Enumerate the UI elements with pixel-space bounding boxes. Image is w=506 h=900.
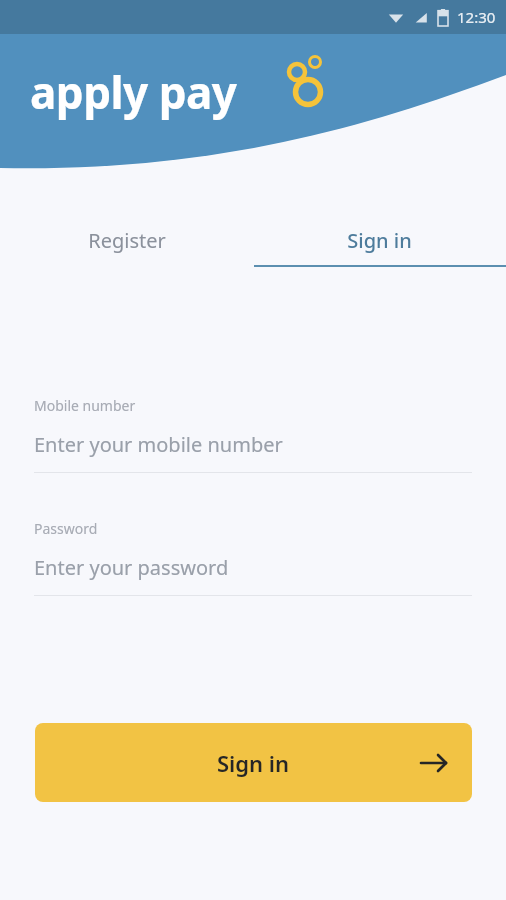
staticText: Enter your password: [34, 554, 229, 581]
staticText: Password: [34, 519, 98, 538]
button[interactable]: Register: [0, 212, 253, 268]
other: Proceed: [420, 749, 448, 777]
button[interactable]: Enter your mobile number: [34, 431, 472, 458]
staticText: 12:30: [457, 7, 496, 27]
button[interactable]: Enter your password: [34, 554, 472, 581]
staticText: Enter your mobile number: [34, 431, 283, 458]
staticText: Sign in: [217, 748, 290, 778]
staticText: Mobile number: [34, 396, 136, 415]
staticText: Sign in: [347, 227, 412, 254]
staticText: apply pay: [30, 62, 237, 122]
staticText: Register: [88, 227, 166, 254]
button[interactable]: Sign in: [253, 212, 506, 268]
button[interactable]: Sign in: [35, 723, 472, 802]
